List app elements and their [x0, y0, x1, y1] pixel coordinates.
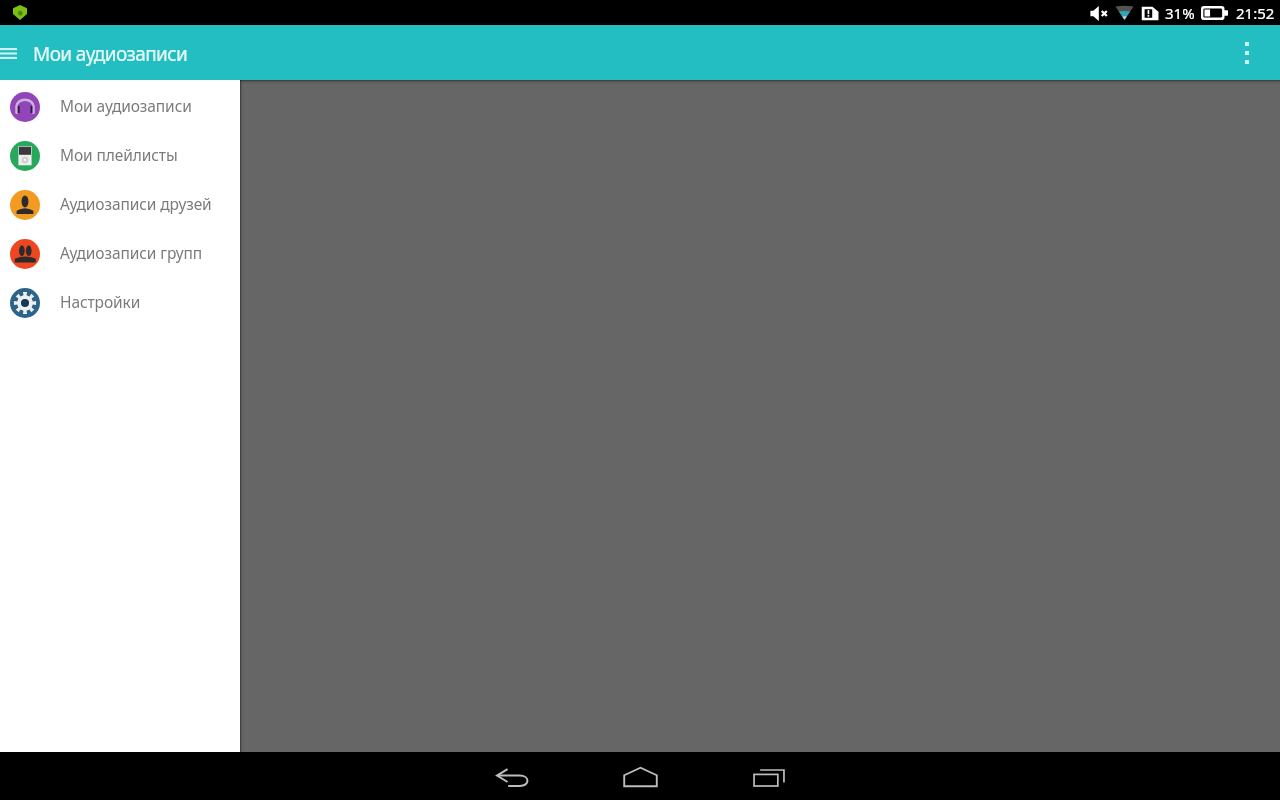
staticText: Настройки	[60, 291, 141, 312]
button[interactable]: Мои плейлисты	[0, 131, 240, 180]
staticText: 21:52	[1236, 3, 1275, 23]
staticText: Аудиозаписи групп	[60, 242, 203, 263]
button[interactable]: Recent apps	[704, 752, 832, 800]
staticText: Мои плейлисты	[60, 144, 178, 165]
button[interactable]: Open navigation drawer	[0, 29, 24, 77]
staticText: Мои аудиозаписи	[60, 95, 192, 116]
button[interactable]: Мои аудиозаписи	[0, 82, 240, 131]
staticText: 31%	[1165, 3, 1195, 23]
button[interactable]: Настройки	[0, 278, 240, 327]
button[interactable]: More options	[1232, 29, 1262, 77]
button[interactable]: Аудиозаписи друзей	[0, 180, 240, 229]
button[interactable]: Home	[576, 752, 704, 800]
button[interactable]: Аудиозаписи групп	[0, 229, 240, 278]
staticText: Аудиозаписи друзей	[60, 193, 212, 214]
staticText: Мои аудиозаписи	[33, 41, 188, 67]
button[interactable]: Back	[448, 752, 576, 800]
